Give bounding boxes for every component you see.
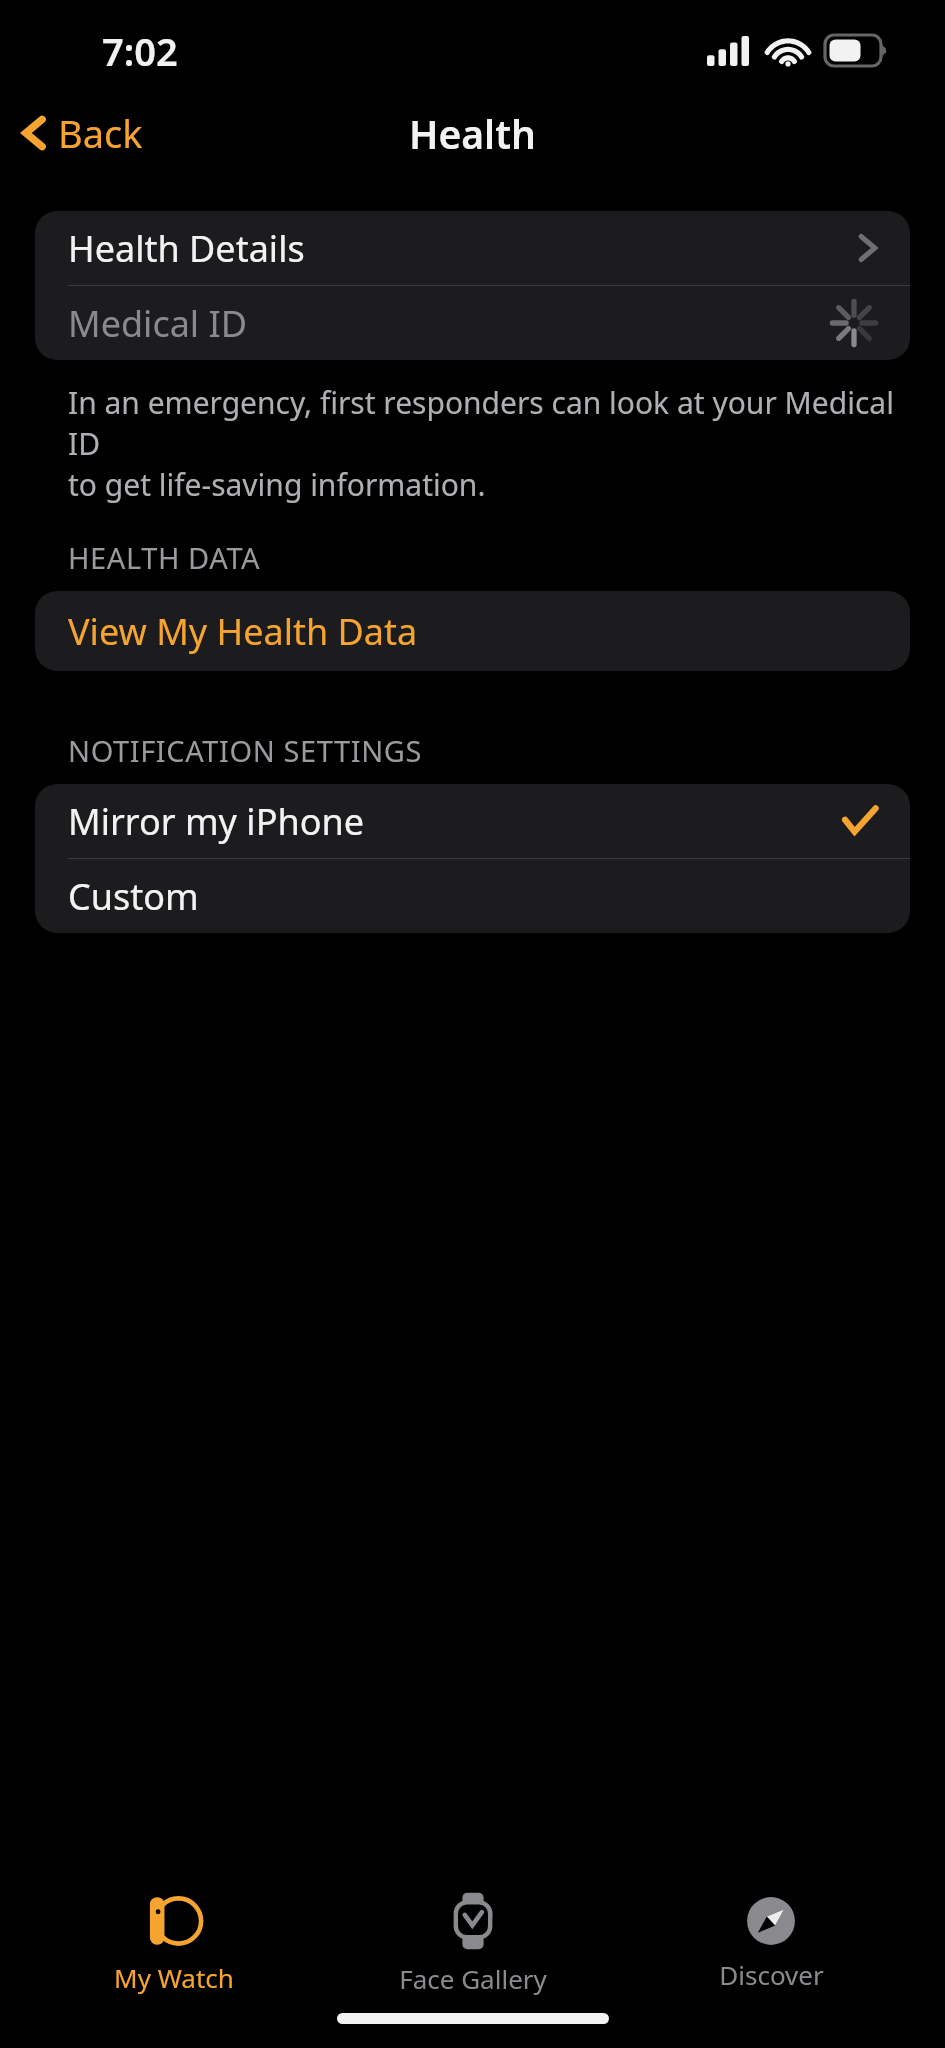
other: Face Gallery bbox=[447, 1891, 499, 1951]
staticText: Mirror my iPhone bbox=[68, 797, 364, 846]
other: My Watch bbox=[146, 1892, 202, 1950]
staticText: Discover bbox=[719, 1957, 824, 1992]
staticText: HEALTH DATA bbox=[68, 538, 261, 577]
staticText: Health Details bbox=[68, 224, 305, 273]
other: Discover bbox=[745, 1895, 797, 1947]
button[interactable]: View My Health Data bbox=[35, 591, 910, 671]
button[interactable]: Face Gallery bbox=[348, 1885, 598, 2002]
button[interactable]: Mirror my iPhone bbox=[35, 784, 910, 858]
button[interactable]: Back bbox=[0, 99, 159, 167]
staticText: My Watch bbox=[114, 1960, 234, 1995]
button[interactable]: Health Details bbox=[35, 211, 910, 285]
staticText: Face Gallery bbox=[399, 1961, 547, 1996]
staticText: In an emergency, first responders can lo… bbox=[68, 382, 902, 505]
staticText: Health bbox=[409, 107, 536, 160]
staticText: Custom bbox=[68, 872, 199, 921]
button[interactable]: My Watch bbox=[49, 1886, 299, 2001]
staticText: View My Health Data bbox=[68, 607, 418, 656]
button[interactable]: Custom bbox=[35, 859, 910, 933]
button[interactable]: Discover bbox=[646, 1889, 896, 1998]
staticText: NOTIFICATION SETTINGS bbox=[68, 731, 423, 770]
staticText: 7:02 bbox=[102, 25, 178, 77]
button[interactable]: Medical ID bbox=[35, 286, 910, 360]
staticText: Medical ID bbox=[68, 299, 247, 348]
staticText: Back bbox=[58, 107, 143, 159]
